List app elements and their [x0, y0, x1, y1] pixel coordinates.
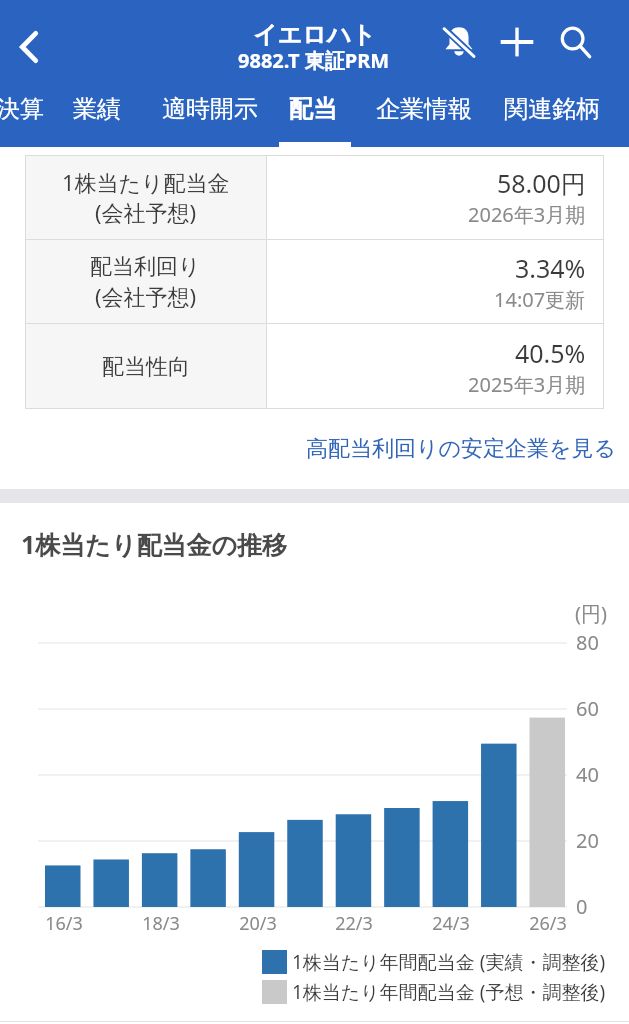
- staticText: 18/3: [142, 911, 180, 936]
- button[interactable]: 配当: [261, 85, 365, 147]
- staticText: 40.5%: [515, 336, 586, 370]
- button[interactable]: 高配当利回りの安定企業を見る: [0, 432, 629, 466]
- staticText: 26/3: [529, 911, 567, 936]
- staticText: 80: [576, 629, 599, 656]
- staticText: 1株当たり年間配当金 (実績・調整後): [292, 949, 606, 975]
- staticText: 配当: [289, 94, 337, 124]
- staticText: 60: [576, 695, 599, 722]
- button[interactable]: 関連銘柄: [476, 85, 628, 147]
- staticText: 1株当たり年間配当金 (予想・調整後): [292, 979, 606, 1005]
- button[interactable]: Alerts off: [430, 13, 488, 71]
- staticText: イエロハト: [253, 20, 376, 50]
- button[interactable]: 決算: [0, 85, 72, 147]
- button[interactable]: Add: [488, 13, 546, 71]
- staticText: 3.34%: [515, 251, 586, 285]
- staticText: 適時開示: [162, 94, 258, 124]
- staticText: 20/3: [239, 911, 277, 936]
- staticText: 22/3: [335, 911, 373, 936]
- staticText: 関連銘柄: [504, 94, 600, 124]
- button[interactable]: Back: [0, 18, 58, 76]
- staticText: 24/3: [432, 911, 470, 936]
- staticText: 2026年3月期: [468, 201, 586, 228]
- staticText: 決算: [0, 94, 44, 124]
- button[interactable]: Search: [546, 13, 604, 71]
- staticText: (円): [575, 600, 607, 627]
- staticText: 0: [576, 893, 588, 920]
- staticText: 16/3: [45, 911, 83, 936]
- staticText: 2025年3月期: [468, 371, 586, 398]
- staticText: 高配当利回りの安定企業を見る: [306, 435, 617, 463]
- staticText: 9882.T 東証PRM: [238, 47, 390, 74]
- staticText: 企業情報: [376, 94, 472, 124]
- button[interactable]: 適時開示: [134, 85, 286, 147]
- staticText: (会社予想): [95, 197, 197, 227]
- button[interactable]: 業績: [45, 85, 149, 147]
- staticText: 20: [576, 827, 599, 854]
- staticText: (会社予想): [95, 281, 197, 311]
- staticText: 配当性向: [102, 353, 190, 381]
- staticText: 配当利回り: [90, 253, 201, 281]
- staticText: 40: [576, 761, 599, 788]
- staticText: 業績: [73, 94, 121, 124]
- button[interactable]: 企業情報: [348, 85, 500, 147]
- staticText: 1株当たり配当金の推移: [21, 527, 288, 561]
- staticText: 58.00円: [497, 166, 586, 200]
- staticText: 14:07更新: [494, 286, 586, 313]
- staticText: 1株当たり配当金: [62, 167, 230, 197]
